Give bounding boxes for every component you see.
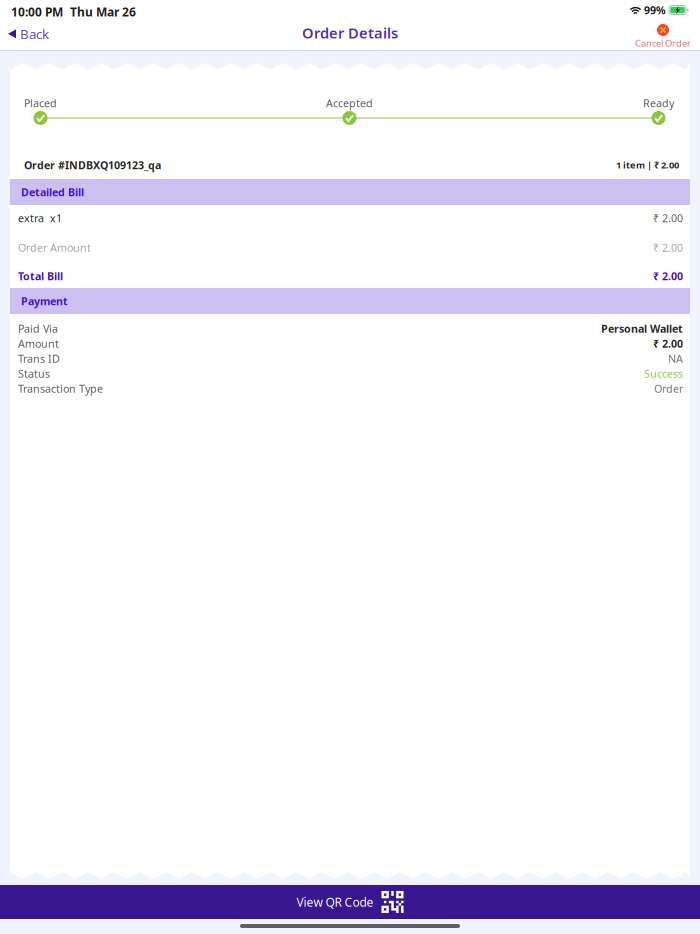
staticText: Accepted xyxy=(326,96,373,110)
button[interactable]: View QR Code xyxy=(0,885,700,919)
staticText: Personal Wallet xyxy=(601,321,683,336)
staticText: ₹ 2.00 xyxy=(653,269,683,283)
staticText: View QR Code xyxy=(296,894,373,910)
staticText: Ready xyxy=(643,96,674,110)
staticText: ₹ 2.00 xyxy=(653,240,683,255)
button[interactable]: Cancel Order xyxy=(635,24,691,49)
staticText: Order #INDBXQ109123_qa xyxy=(24,158,161,172)
staticText: Amount xyxy=(18,336,59,351)
staticText: Total Bill xyxy=(18,269,63,283)
staticText: 1 item | ₹ 2.00 xyxy=(616,159,679,171)
staticText: ₹ 2.00 xyxy=(653,336,683,351)
staticText: Cancel Order xyxy=(635,37,691,49)
staticText: Detailed Bill xyxy=(21,185,84,199)
staticText: Order xyxy=(654,381,683,396)
button[interactable]: Back xyxy=(4,20,53,48)
staticText: extra x1 xyxy=(18,211,62,225)
staticText: Transaction Type xyxy=(18,381,103,396)
staticText: ₹ 2.00 xyxy=(653,211,683,225)
staticText: Success xyxy=(644,366,683,381)
staticText: NA xyxy=(668,351,683,366)
staticText: Trans ID xyxy=(18,351,60,366)
staticText: 10:00 PM xyxy=(11,4,63,20)
staticText: Status xyxy=(18,366,50,381)
staticText: Paid Via xyxy=(18,321,58,336)
staticText: Payment xyxy=(21,294,68,308)
staticText: Order Amount xyxy=(18,240,91,255)
staticText: Back xyxy=(20,25,49,43)
staticText: Thu Mar 26 xyxy=(70,4,136,20)
staticText: 99% xyxy=(644,3,666,17)
staticText: Order Details xyxy=(302,23,398,42)
staticText: Placed xyxy=(24,96,57,110)
